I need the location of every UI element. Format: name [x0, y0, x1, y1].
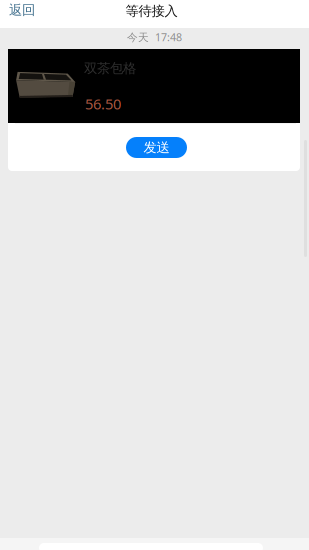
button[interactable]: 返回	[0, 0, 44, 28]
button[interactable]: 双茶包格	[8, 49, 300, 123]
staticText: 56.50	[85, 94, 121, 113]
staticText: 双茶包格	[84, 60, 136, 76]
staticText: 等待接入	[125, 3, 177, 19]
staticText: 今天 17:48	[127, 30, 182, 44]
button[interactable]: 发送	[126, 137, 187, 158]
staticText: 返回	[9, 2, 35, 18]
staticText: 发送	[143, 139, 169, 156]
